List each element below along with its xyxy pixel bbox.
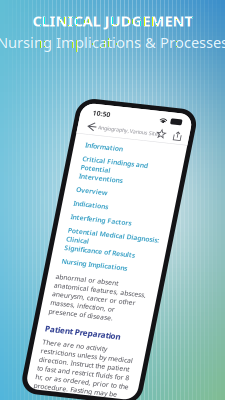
- staticText: abnormal or absent anatomical features, …: [91, 274, 184, 318]
- staticText: Overview: [94, 185, 126, 194]
- button[interactable]: Interfering Factors: [94, 213, 187, 222]
- staticText: Interfering Factors: [94, 213, 155, 222]
- button[interactable]: Share: [177, 118, 190, 132]
- button[interactable]: Overview: [94, 185, 187, 194]
- staticText: Critical Findings and Potential Interven…: [94, 154, 160, 180]
- button[interactable]: Critical Findings and Potential Interven…: [94, 154, 187, 180]
- staticText: Patient Preparation: [91, 326, 167, 337]
- staticText: Indications: [94, 199, 129, 208]
- staticText: Nursing Implications & Processes: [0, 32, 225, 52]
- button[interactable]: Information: [94, 140, 187, 149]
- staticText: Information: [94, 140, 132, 149]
- staticText: Angiography, Various Sites: [103, 122, 166, 129]
- button[interactable]: Back: [88, 117, 105, 134]
- staticText: CLINICAL JUDGEMENT: [32, 11, 192, 30]
- button[interactable]: Potential Medical Diagnosis: Clinical Si…: [94, 227, 187, 253]
- staticText: Potential Medical Diagnosis: Clinical Si…: [94, 227, 186, 253]
- staticText: There are no activity restrictions unles…: [91, 341, 185, 400]
- button[interactable]: Favourite: [160, 118, 174, 132]
- staticText: Nursing Implications: [94, 258, 160, 267]
- staticText: 10:50: [95, 107, 113, 116]
- button[interactable]: Indications: [94, 199, 187, 208]
- button[interactable]: Nursing Implications: [94, 258, 187, 267]
